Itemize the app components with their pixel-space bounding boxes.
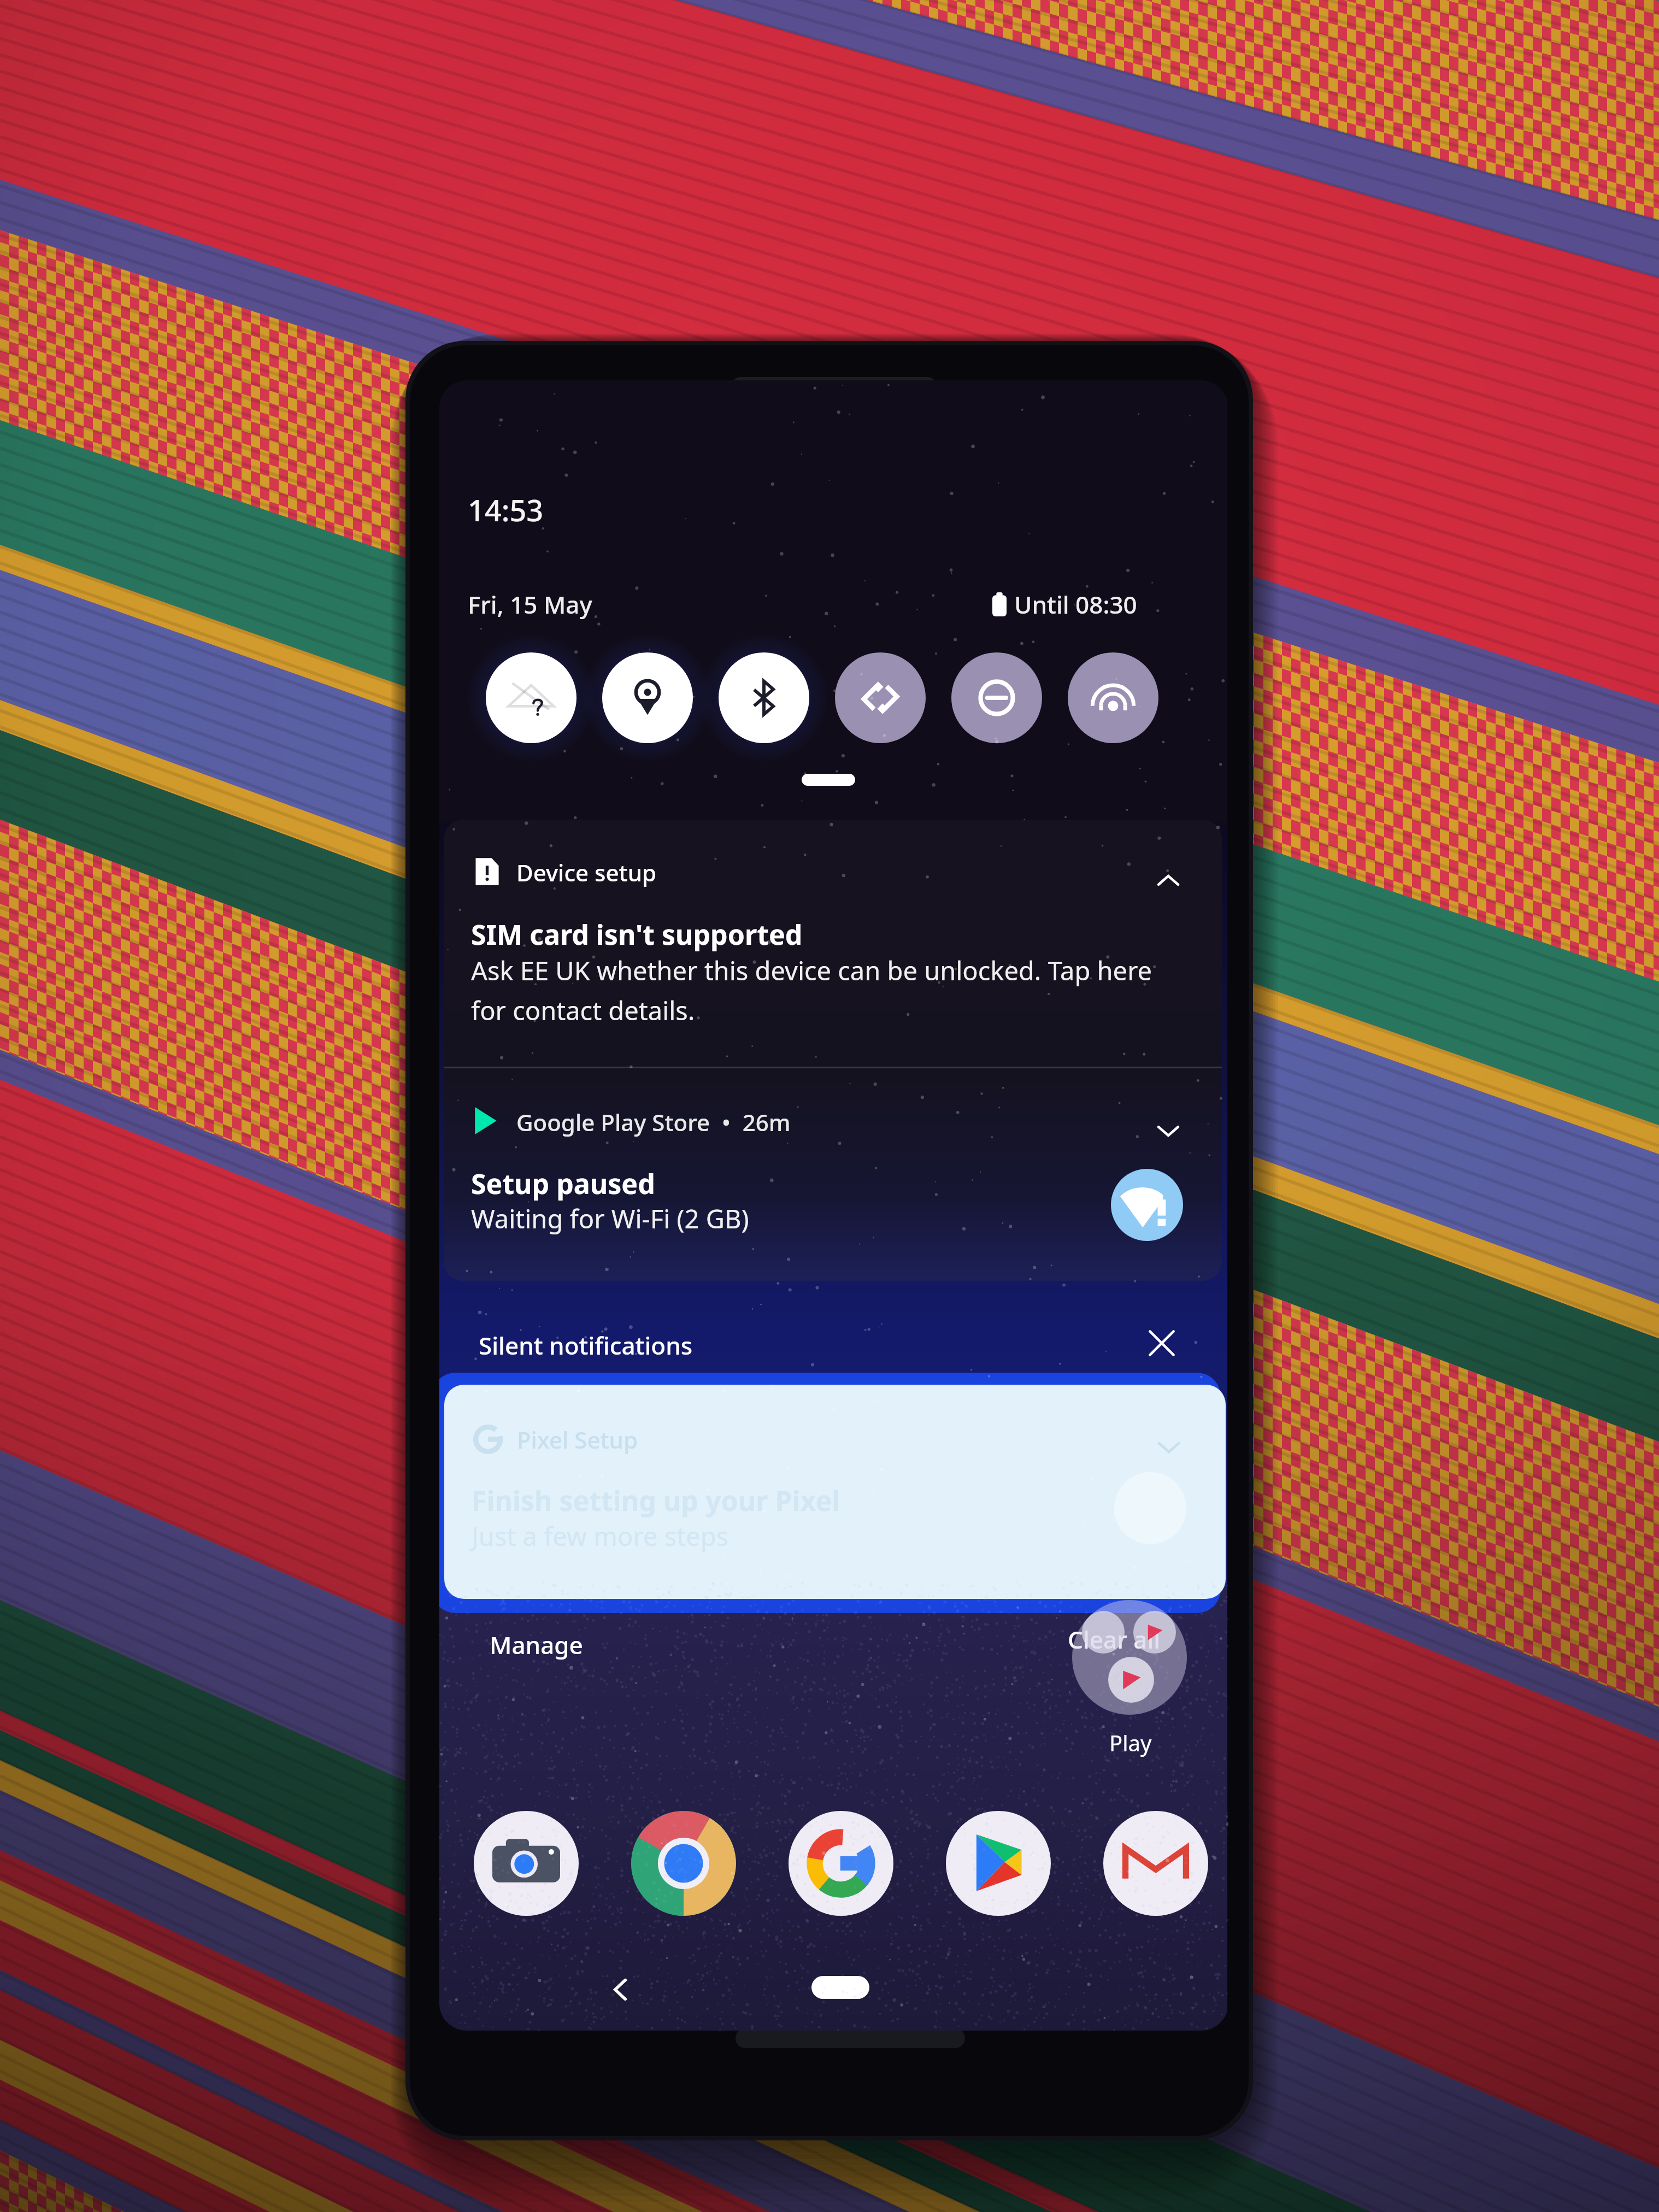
button[interactable]: Auto-rotate — [835, 652, 926, 743]
button[interactable]: Cast — [1068, 652, 1158, 743]
button[interactable]: Camera — [474, 1811, 579, 1916]
staticText: Just a few more steps — [472, 1519, 729, 1554]
staticText: Pixel Setup — [517, 1424, 638, 1455]
staticText: Finish setting up your Pixel — [472, 1482, 840, 1519]
staticText: 14:53 — [468, 490, 544, 530]
staticText: Device setup — [516, 857, 657, 888]
button[interactable]: Google — [789, 1811, 893, 1916]
button[interactable]: Do not disturb — [951, 652, 1042, 743]
button[interactable]: Device setup notification — [444, 820, 1222, 1067]
staticText: Clear all — [1068, 1623, 1161, 1656]
staticText: Manage — [490, 1628, 583, 1661]
button[interactable]: Wi-Fi — [486, 652, 576, 743]
staticText: SIM card isn't supported — [471, 916, 803, 953]
button[interactable]: Back — [604, 1974, 636, 2005]
staticText: Play — [1109, 1728, 1152, 1757]
button[interactable]: Google Play Store notification — [444, 1068, 1222, 1281]
button[interactable]: Play folder — [1072, 1600, 1187, 1715]
staticText: Fri, 15 May — [468, 588, 592, 621]
staticText: Silent notifications — [479, 1329, 693, 1362]
button[interactable]: Pixel Setup notification — [444, 1385, 1226, 1599]
staticText: Ask EE UK whether this device can be unl… — [471, 953, 1176, 1027]
button[interactable]: Clear all — [1061, 1619, 1167, 1660]
button[interactable]: Manage — [483, 1624, 590, 1666]
button[interactable]: Bluetooth — [719, 652, 809, 743]
button[interactable]: Chrome — [631, 1811, 736, 1916]
button[interactable]: Gmail — [1103, 1811, 1208, 1916]
button[interactable]: Location — [602, 652, 693, 743]
staticText: Setup paused — [471, 1165, 655, 1202]
staticText: Waiting for Wi-Fi (2 GB) — [471, 1201, 749, 1236]
staticText: Google Play Store • 26m — [516, 1107, 791, 1138]
button[interactable]: Play Store — [946, 1811, 1051, 1916]
staticText: Until 08:30 — [1014, 588, 1137, 621]
button[interactable]: Dismiss silent notifications — [1142, 1323, 1181, 1363]
